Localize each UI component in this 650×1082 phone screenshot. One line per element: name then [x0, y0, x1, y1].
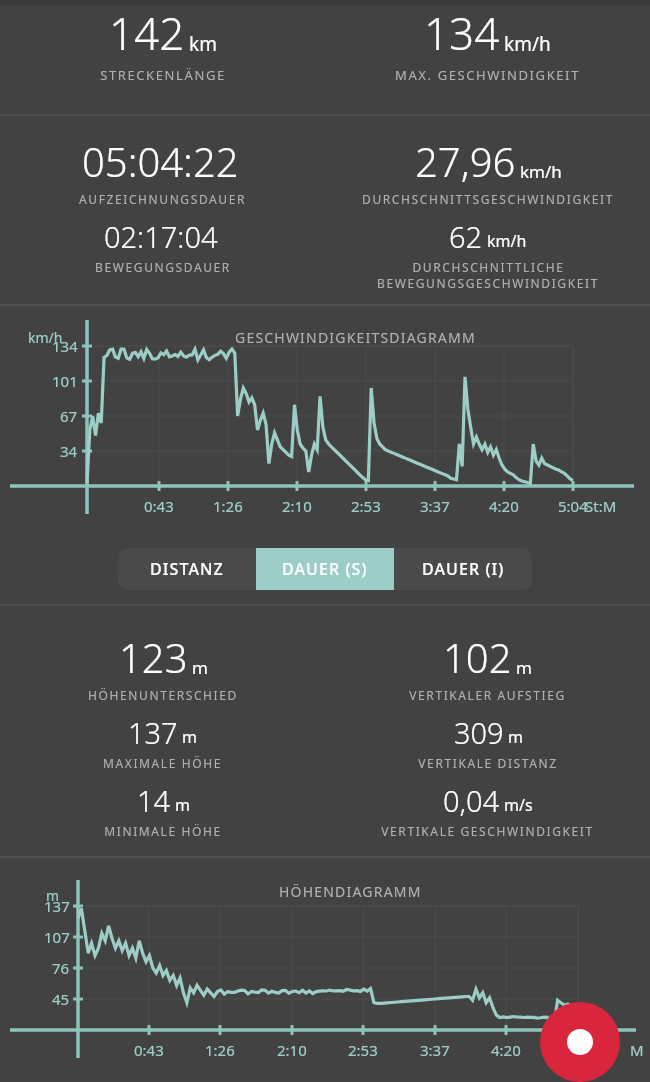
staticText: 2:10: [277, 1040, 307, 1060]
staticText: 142: [109, 3, 185, 63]
staticText: 45: [52, 989, 70, 1009]
staticText: 309: [454, 713, 504, 752]
staticText: BEWEGUNGSGESCHWINDIGKEIT: [377, 275, 599, 291]
staticText: 4:20: [491, 1040, 521, 1060]
staticText: 123: [119, 630, 188, 684]
staticText: 101: [52, 371, 78, 391]
staticText: 02:17:04: [104, 217, 218, 256]
button[interactable]: DAUER (S): [256, 548, 394, 590]
button[interactable]: DISTANZ: [118, 548, 256, 590]
staticText: 107: [44, 927, 70, 947]
staticText: DISTANZ: [150, 558, 224, 580]
staticText: BEWEGUNGSDAUER: [95, 259, 231, 275]
staticText: 67: [60, 406, 78, 426]
staticText: 0:43: [144, 496, 174, 516]
staticText: m: [508, 726, 523, 748]
staticText: STRECKENLÄNGE: [100, 66, 226, 84]
staticText: VERTIKALER AUFSTIEG: [409, 687, 566, 703]
staticText: GESCHWINDIGKEITSDIAGRAMM: [235, 328, 476, 347]
staticText: DURCHSCHNITTSGESCHWINDIGKEIT: [362, 191, 614, 207]
staticText: km/h: [28, 328, 63, 347]
staticText: m: [175, 794, 190, 816]
staticText: MINIMALE HÖHE: [104, 823, 222, 839]
staticText: 34: [60, 441, 78, 461]
staticText: 62: [449, 217, 483, 256]
staticText: 137: [128, 713, 178, 752]
staticText: km/h: [487, 230, 527, 252]
staticText: DAUER (S): [282, 558, 368, 580]
staticText: 1:26: [205, 1040, 235, 1060]
staticText: 3:37: [420, 496, 450, 516]
staticText: VERTIKALE DISTANZ: [418, 755, 558, 771]
staticText: 134: [424, 3, 500, 63]
staticText: 137: [44, 896, 70, 916]
staticText: m/s: [504, 794, 533, 816]
staticText: 4:20: [489, 496, 519, 516]
staticText: 05:04:22: [82, 134, 239, 188]
staticText: St:M: [585, 496, 617, 516]
staticText: 3:37: [420, 1040, 450, 1060]
staticText: km/h: [504, 31, 551, 57]
staticText: MAXIMALE HÖHE: [103, 755, 222, 771]
staticText: 1:26: [213, 496, 243, 516]
staticText: AUFZEICHNUNGSDAUER: [79, 191, 246, 207]
staticText: 2:53: [348, 1040, 378, 1060]
button[interactable]: DAUER (I): [394, 548, 532, 590]
staticText: m: [192, 656, 208, 679]
staticText: m: [182, 726, 197, 748]
button[interactable]: Aufzeichnung starten: [540, 1002, 620, 1082]
staticText: 0,04: [443, 781, 500, 820]
staticText: 2:10: [282, 496, 312, 516]
staticText: DURCHSCHNITTLICHE: [412, 259, 565, 275]
staticText: 76: [52, 958, 70, 978]
staticText: 5:04: [558, 496, 588, 516]
staticText: 2:53: [351, 496, 381, 516]
staticText: m: [516, 656, 532, 679]
staticText: M: [630, 1040, 644, 1060]
staticText: VERTIKALE GESCHWINDIGKEIT: [381, 823, 594, 839]
staticText: 14: [137, 781, 171, 820]
staticText: m: [46, 886, 60, 905]
staticText: km/h: [520, 160, 562, 183]
staticText: DAUER (I): [422, 558, 505, 580]
staticText: 102: [443, 630, 512, 684]
staticText: 0:43: [134, 1040, 164, 1060]
staticText: 134: [52, 336, 78, 356]
staticText: HÖHENUNTERSCHIED: [88, 687, 238, 703]
staticText: MAX. GESCHWINDIGKEIT: [395, 66, 580, 84]
staticText: 27,96: [415, 134, 516, 188]
staticText: km: [189, 31, 217, 57]
staticText: HÖHENDIAGRAMM: [279, 882, 422, 901]
